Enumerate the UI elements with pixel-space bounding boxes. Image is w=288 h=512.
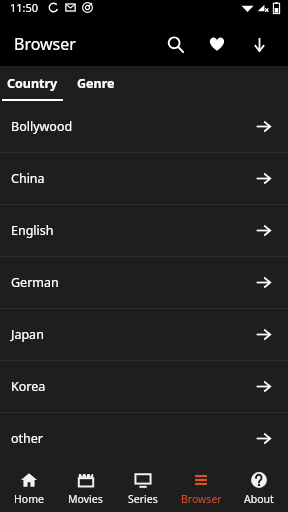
staticText: Series xyxy=(128,492,158,506)
staticText: Korea xyxy=(11,378,46,395)
button[interactable]: other xyxy=(0,413,288,464)
button[interactable]: Favourites xyxy=(200,27,234,61)
button[interactable]: About xyxy=(230,464,288,512)
button[interactable]: Series xyxy=(114,464,172,512)
button[interactable]: Japan xyxy=(0,309,288,360)
staticText: Country xyxy=(7,75,58,92)
button[interactable]: Movies xyxy=(57,464,114,512)
button[interactable]: Home xyxy=(0,464,57,512)
button[interactable]: Search xyxy=(158,27,192,61)
button[interactable]: Browser xyxy=(172,464,230,512)
staticText: Browser xyxy=(181,492,222,506)
button[interactable]: German xyxy=(0,257,288,308)
staticText: Movies xyxy=(68,492,103,506)
staticText: 11:50 xyxy=(10,0,39,15)
button[interactable]: Bollywood xyxy=(0,101,288,152)
staticText: Home xyxy=(14,492,44,506)
staticText: China xyxy=(11,170,45,187)
staticText: Browser xyxy=(14,33,76,55)
button[interactable]: Korea xyxy=(0,361,288,412)
staticText: Bollywood xyxy=(11,118,73,135)
button[interactable]: English xyxy=(0,205,288,256)
staticText: English xyxy=(11,222,54,239)
button[interactable]: Downloads xyxy=(242,27,276,61)
staticText: German xyxy=(11,274,59,291)
button[interactable]: China xyxy=(0,153,288,204)
button[interactable]: Genre xyxy=(65,66,127,101)
staticText: other xyxy=(11,430,44,447)
staticText: About xyxy=(244,492,274,506)
button[interactable]: Country xyxy=(0,66,65,101)
staticText: Genre xyxy=(77,75,115,92)
staticText: Japan xyxy=(11,326,44,343)
